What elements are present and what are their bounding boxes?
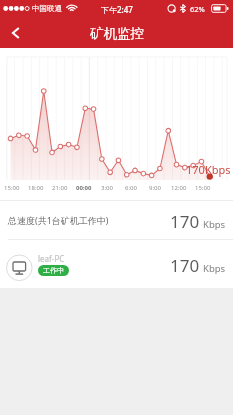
staticText: 170Kbps (186, 162, 231, 177)
staticText: 矿机监控 (90, 25, 144, 42)
staticText: 62% (190, 4, 205, 14)
staticText: 9:00 (149, 184, 161, 192)
staticText: 170 (170, 210, 200, 233)
staticText: 18:00 (28, 184, 44, 192)
staticText: 总速度(共1台矿机工作中) (8, 214, 109, 226)
staticText: 下午2:47 (101, 4, 133, 15)
staticText: 6:00 (125, 184, 137, 192)
staticText: Kbps (203, 218, 226, 231)
staticText: 170 (170, 254, 200, 277)
staticText: Kbps (203, 262, 226, 275)
staticText: 工作中 (43, 266, 64, 275)
staticText: 15:00 (195, 184, 211, 192)
button[interactable]: leaf-PC (0, 240, 233, 288)
staticText: 21:00 (52, 184, 68, 192)
staticText: 中国联通 (32, 4, 62, 13)
staticText: 00:00 (76, 184, 92, 192)
staticText: 15:00 (4, 184, 20, 192)
staticText: 12:00 (171, 184, 187, 192)
staticText: leaf-PC (38, 253, 65, 264)
button[interactable]: 总速度(共1台矿机工作中) (0, 201, 233, 239)
button[interactable]: Back (0, 18, 32, 48)
staticText: 3:00 (101, 184, 113, 192)
